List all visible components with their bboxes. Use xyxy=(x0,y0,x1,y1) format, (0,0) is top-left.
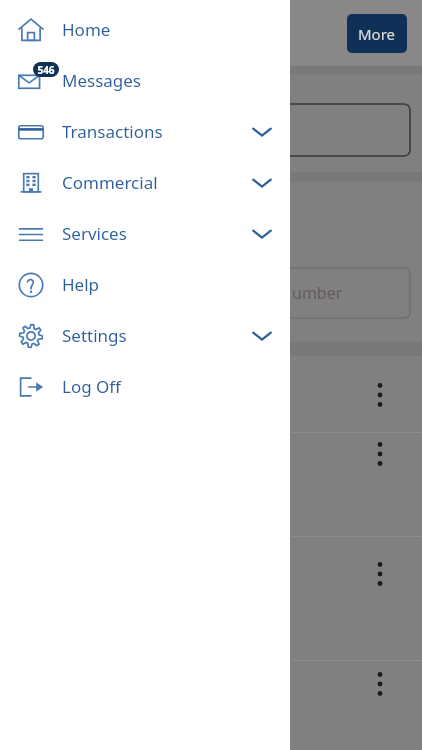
button[interactable]: More options xyxy=(362,373,398,417)
staticText: Messages xyxy=(62,69,234,92)
staticText: Transactions xyxy=(62,120,234,143)
staticText: Log Off xyxy=(62,375,234,398)
button[interactable]: Settings xyxy=(0,310,290,361)
staticText: Settings xyxy=(62,324,234,347)
staticText: Help xyxy=(62,273,234,296)
staticText: 546 xyxy=(37,63,55,77)
button[interactable]: Log Off xyxy=(0,361,290,412)
button[interactable]: More options xyxy=(362,432,398,476)
button[interactable]: More options xyxy=(362,552,398,596)
button[interactable]: 546 xyxy=(0,55,290,106)
staticText: More xyxy=(358,24,396,44)
button[interactable]: Services xyxy=(0,208,290,259)
button[interactable] xyxy=(236,104,410,156)
button[interactable]: umber xyxy=(236,268,410,318)
button[interactable]: Transactions xyxy=(0,106,290,157)
staticText: Services xyxy=(62,222,234,245)
button[interactable]: Home xyxy=(0,4,290,55)
button[interactable]: More options xyxy=(362,662,398,706)
staticText: umber xyxy=(292,282,343,304)
button[interactable]: More xyxy=(347,14,407,53)
button[interactable]: Help xyxy=(0,259,290,310)
staticText: Home xyxy=(62,18,234,41)
staticText: Commercial xyxy=(62,171,234,194)
button[interactable]: Commercial xyxy=(0,157,290,208)
